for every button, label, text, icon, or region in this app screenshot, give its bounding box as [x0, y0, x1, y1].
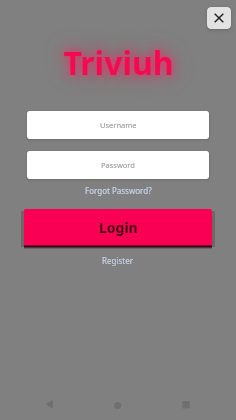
button[interactable]: Recent apps: [172, 391, 199, 418]
button[interactable]: Forgot Password?: [82, 184, 155, 197]
button[interactable]: Register: [99, 254, 137, 267]
staticText: Triviuh: [63, 41, 174, 85]
staticText: Password: [101, 160, 135, 170]
staticText: Username: [100, 120, 137, 130]
button[interactable]: Home: [104, 392, 131, 419]
button[interactable]: Password: [27, 151, 209, 179]
button[interactable]: Login: [24, 209, 212, 245]
button[interactable]: Username: [27, 111, 209, 139]
staticText: Forgot Password?: [85, 185, 152, 196]
button[interactable]: Close: [207, 7, 231, 29]
button[interactable]: Back: [36, 391, 63, 418]
staticText: Triviuh: [63, 41, 174, 85]
staticText: Login: [99, 218, 138, 237]
staticText: Register: [102, 255, 134, 266]
